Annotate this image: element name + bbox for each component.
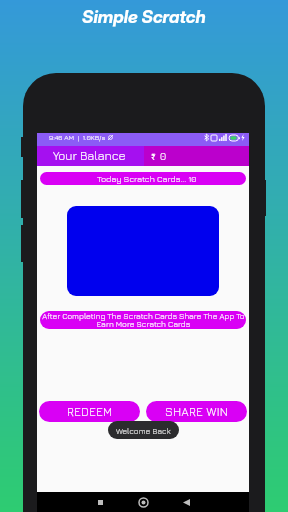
button[interactable]: After Completing The Scratch Cards Share… <box>40 311 246 329</box>
button[interactable]: Your Balance <box>37 146 144 166</box>
staticText: Welcome Back <box>116 426 171 435</box>
button[interactable]: Recent apps <box>96 498 104 506</box>
button[interactable]: ₹ <box>144 146 249 166</box>
staticText: 0 <box>160 150 167 162</box>
staticText: REDEEM <box>67 405 113 419</box>
button[interactable]: REDEEM <box>39 401 140 422</box>
button[interactable]: Back <box>182 498 190 506</box>
staticText: ₹ <box>151 151 156 162</box>
staticText: Your Balance <box>53 149 126 163</box>
staticText: After Completing The Scratch Cards Share… <box>42 311 245 329</box>
button[interactable]: Home <box>138 497 148 507</box>
button[interactable]: SHARE WIN <box>146 401 247 422</box>
staticText: Today Scratch Cards... 10 <box>97 174 197 184</box>
staticText: Simple Scratch <box>82 6 206 27</box>
button[interactable]: Scratch card <box>67 206 219 296</box>
staticText: 9:46 AM | 1.0KB/s <box>49 133 106 141</box>
staticText: SHARE WIN <box>165 405 229 419</box>
button[interactable]: Today Scratch Cards... 10 <box>40 172 246 185</box>
